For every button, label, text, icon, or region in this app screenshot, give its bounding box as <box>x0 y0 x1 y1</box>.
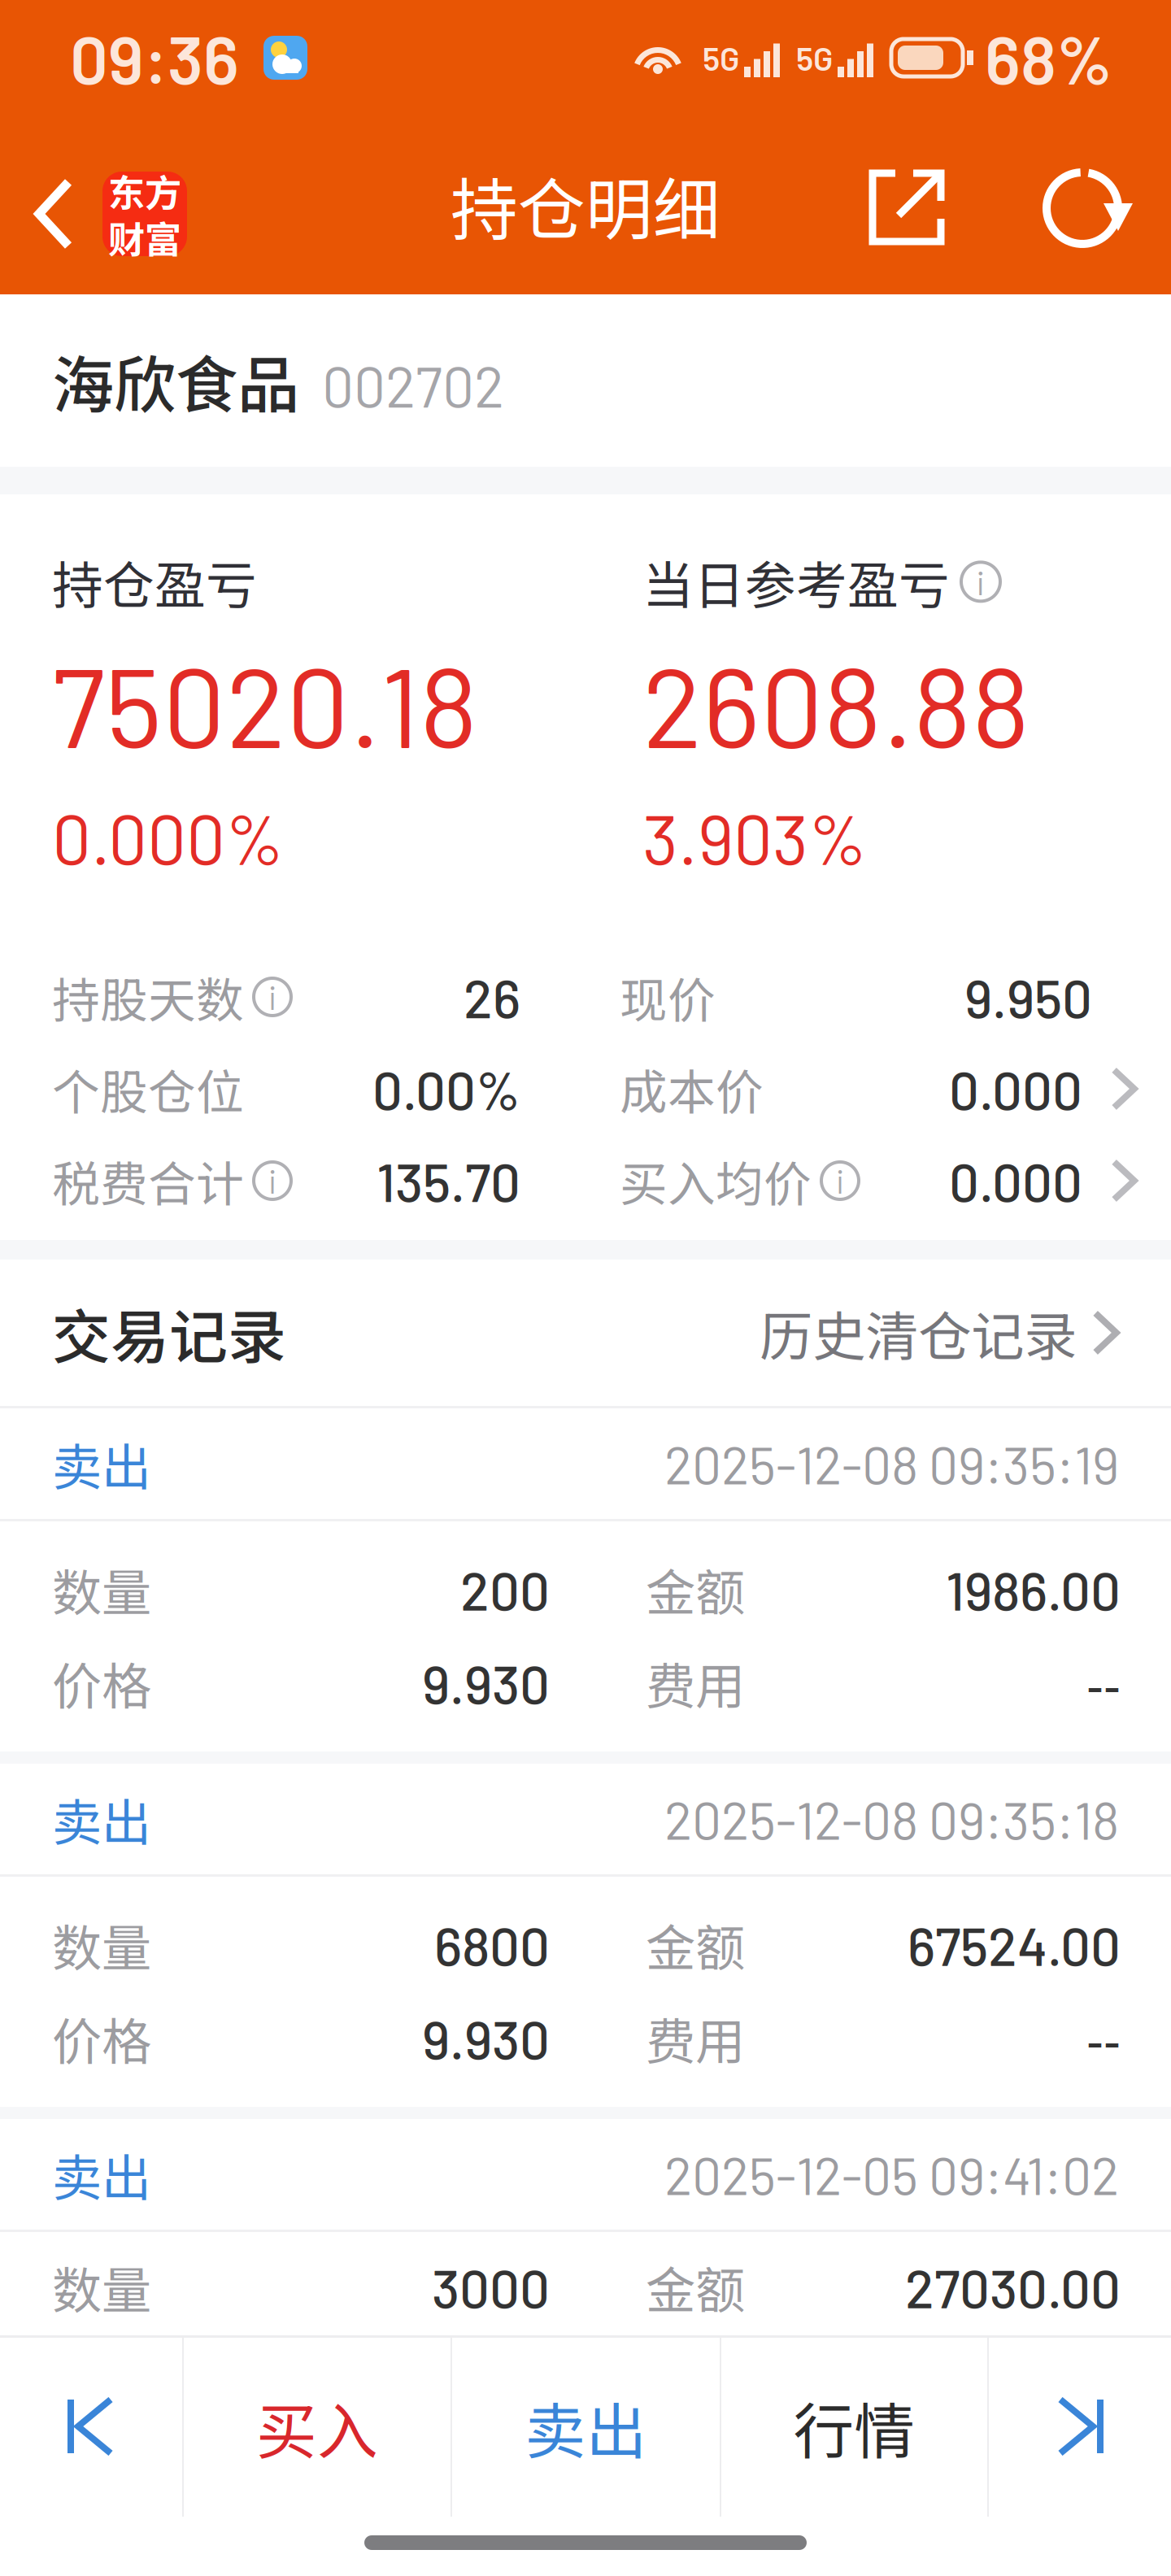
staticText: 数量 <box>52 2251 151 2323</box>
staticText: 价格 <box>52 1647 151 1719</box>
staticText: 数量 <box>52 1553 151 1625</box>
staticText: 200 <box>460 1557 550 1621</box>
staticText: i <box>268 1161 276 1200</box>
button[interactable]: Last page <box>989 2338 1171 2517</box>
staticText: 费用 <box>646 2002 745 2074</box>
staticText: 0.00% <box>372 1057 520 1121</box>
staticText: 0.000 <box>949 1149 1082 1213</box>
staticText: 费用 <box>646 1647 745 1719</box>
staticText: 9.930 <box>422 2006 550 2070</box>
staticText: 数量 <box>52 1909 151 1981</box>
staticText: 1986.00 <box>946 1557 1121 1621</box>
staticText: 金额 <box>646 1909 745 1981</box>
staticText: 卖出 <box>52 1783 151 1855</box>
staticText: 买入均价 <box>620 1146 812 1215</box>
staticText: 2608.88 <box>642 636 1030 770</box>
staticText: 26 <box>464 965 520 1029</box>
staticText: 3.903% <box>642 796 867 879</box>
staticText: 2025-12-05 09:41:02 <box>664 2143 1119 2206</box>
staticText: 东方 <box>108 164 181 217</box>
staticText: 6800 <box>434 1913 550 1976</box>
button[interactable]: 行情 <box>721 2338 987 2517</box>
staticText: 68% <box>985 17 1112 98</box>
staticText: 3000 <box>432 2255 550 2319</box>
staticText: 持仓盈亏 <box>52 545 257 619</box>
staticText: 税费合计 <box>52 1146 244 1215</box>
staticText: i <box>976 562 985 602</box>
button[interactable]: Back <box>0 124 187 285</box>
staticText: 历史清仓记录 <box>760 1294 1077 1371</box>
staticText: 0.000% <box>52 796 284 879</box>
staticText: 卖出 <box>525 2383 647 2471</box>
staticText: 金额 <box>646 2251 745 2323</box>
staticText: 9.930 <box>422 1651 550 1715</box>
staticText: -- <box>1086 2004 1121 2073</box>
staticText: i <box>268 977 276 1016</box>
staticText: 5G <box>703 38 740 77</box>
staticText: 持股天数 <box>52 962 244 1031</box>
staticText: i <box>836 1161 844 1200</box>
staticText: 09:36 <box>70 17 239 98</box>
staticText: 价格 <box>52 2002 151 2074</box>
staticText: 9.950 <box>964 965 1092 1029</box>
staticText: 海欣食品 <box>52 336 299 425</box>
staticText: 卖出 <box>52 1428 151 1500</box>
button[interactable]: 历史清仓记录 <box>760 1294 1119 1371</box>
button[interactable]: Refresh <box>1030 128 1147 282</box>
staticText: 买入 <box>256 2383 378 2471</box>
staticText: 卖出 <box>52 2138 151 2210</box>
staticText: 0.000 <box>949 1057 1082 1121</box>
staticText: 成本价 <box>620 1054 764 1123</box>
staticText: 002702 <box>322 351 504 419</box>
staticText: 现价 <box>620 962 716 1031</box>
staticText: 交易记录 <box>52 1290 286 1375</box>
staticText: 持仓明细 <box>451 156 720 254</box>
staticText: -- <box>1086 1648 1121 1717</box>
staticText: 2025-12-08 09:35:19 <box>664 1432 1119 1495</box>
staticText: 财富 <box>108 211 181 264</box>
staticText: 5G <box>796 38 834 77</box>
button[interactable]: 买入 <box>184 2338 451 2517</box>
staticText: 金额 <box>646 1553 745 1625</box>
staticText: 135.70 <box>377 1149 520 1213</box>
staticText: 27030.00 <box>905 2255 1121 2319</box>
button[interactable]: Share <box>845 128 969 281</box>
staticText: 个股仓位 <box>52 1054 244 1123</box>
staticText: 2025-12-08 09:35:18 <box>664 1788 1119 1850</box>
staticText: 75020.18 <box>52 636 478 770</box>
button[interactable]: First page <box>0 2338 182 2517</box>
staticText: 当日参考盈亏 <box>642 545 950 619</box>
staticText: 行情 <box>793 2383 915 2471</box>
staticText: 67524.00 <box>908 1913 1121 1976</box>
button[interactable]: 卖出 <box>452 2338 720 2517</box>
